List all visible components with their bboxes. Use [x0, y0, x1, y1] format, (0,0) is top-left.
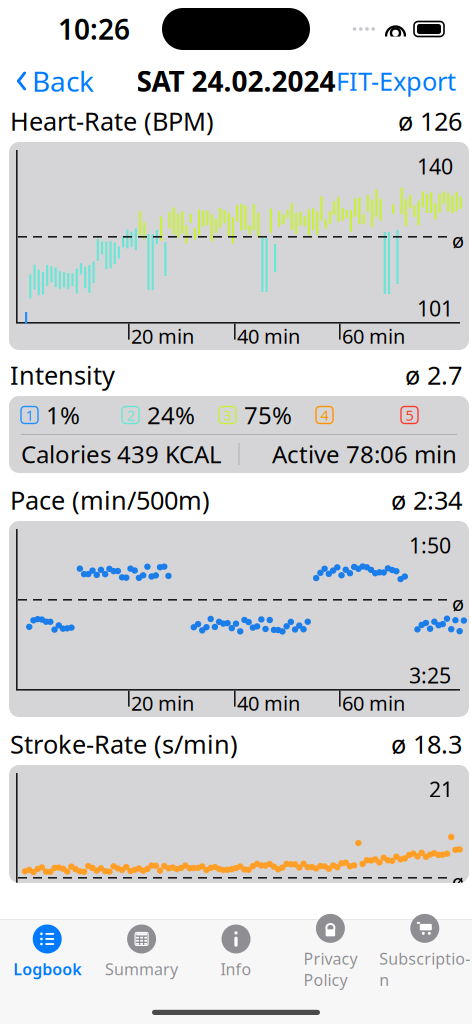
staticText: 1:50 [409, 531, 451, 559]
staticText: 4 [320, 405, 328, 425]
staticText: Stroke-Rate (s/min) [10, 727, 238, 761]
staticText: ø 18.3 [391, 727, 462, 761]
staticText: ø 2.7 [405, 358, 462, 392]
staticText: Summary [105, 958, 178, 980]
button[interactable]: Privacy Policy [283, 907, 378, 990]
button[interactable]: Summary [94, 917, 189, 980]
staticText: Heart-Rate (BPM) [10, 104, 214, 138]
staticText: 101 [417, 294, 453, 322]
staticText: 40 min [237, 690, 300, 716]
button[interactable]: Back [4, 56, 106, 106]
staticText: SAT 24.02.2024 [136, 62, 335, 100]
staticText: ø [452, 590, 464, 617]
staticText: 2 [126, 405, 134, 425]
staticText: 5 [405, 405, 413, 425]
staticText: 40 min [237, 323, 300, 349]
staticText: 20 min [131, 690, 194, 716]
staticText: ø 2:34 [391, 483, 462, 517]
button[interactable]: Subscription [378, 907, 472, 990]
button[interactable]: FIT-Export [324, 58, 468, 104]
staticText: ø [452, 227, 464, 254]
staticText: FIT-Export [336, 64, 456, 98]
staticText: ø [452, 868, 464, 895]
button[interactable]: Info [189, 917, 283, 980]
staticText: 10:26 [58, 10, 130, 48]
button[interactable]: Logbook [0, 917, 94, 980]
staticText: 3 [223, 405, 231, 425]
staticText: Info [220, 958, 251, 980]
staticText: 1% [46, 399, 80, 431]
staticText: Logbook [13, 958, 81, 980]
staticText: 3:25 [409, 661, 451, 689]
staticText: 75% [244, 399, 292, 431]
staticText: Calories 439 KCAL [21, 438, 222, 470]
staticText: Subscription [379, 948, 470, 990]
staticText: 20 min [131, 323, 194, 349]
staticText: 1 [25, 405, 33, 425]
staticText: Back [32, 62, 94, 100]
staticText: 21 [429, 775, 453, 803]
staticText: Active 78:06 min [272, 438, 457, 470]
staticText: Pace (min/500m) [10, 483, 210, 517]
staticText: ø 126 [398, 104, 462, 138]
staticText: Privacy Policy [303, 948, 357, 990]
staticText: Intensity [10, 358, 115, 392]
staticText: 60 min [342, 323, 405, 349]
staticText: 60 min [342, 690, 405, 716]
staticText: 140 [417, 152, 453, 180]
staticText: 24% [147, 399, 195, 431]
